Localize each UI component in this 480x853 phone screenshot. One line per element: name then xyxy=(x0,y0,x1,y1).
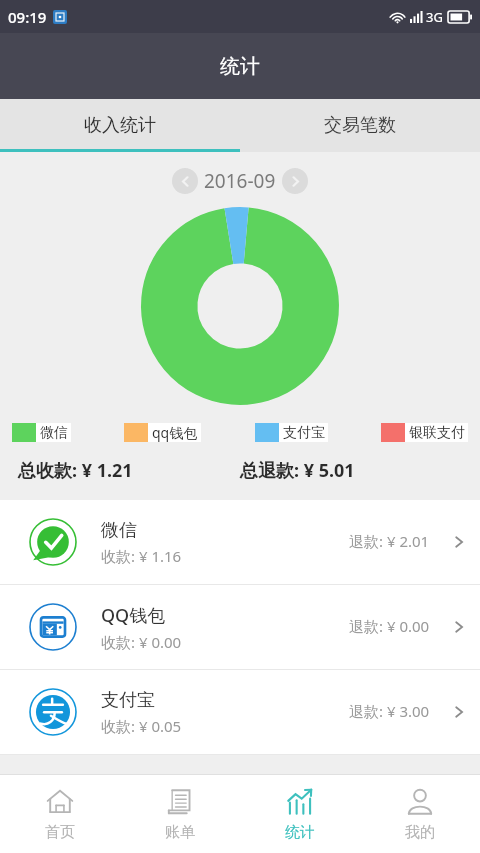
button[interactable]: 交易笔数 xyxy=(240,99,480,152)
staticText: 统计 xyxy=(285,823,315,842)
staticText: 退款: ¥ 2.01 xyxy=(349,531,430,551)
staticText: 首页 xyxy=(45,823,75,842)
staticText: 总收款: ¥ 1.21 xyxy=(18,458,133,483)
button[interactable]: 首页 xyxy=(0,775,120,853)
staticText: 3G xyxy=(426,8,443,26)
staticText: 我的 xyxy=(405,823,435,842)
staticText: 总退款: ¥ 5.01 xyxy=(240,458,355,483)
staticText: 交易笔数 xyxy=(324,114,396,137)
staticText: 微信 xyxy=(40,424,68,442)
staticText: 收款: ¥ 0.00 xyxy=(101,632,182,652)
button[interactable]: 我的 xyxy=(360,775,480,853)
staticText: QQ钱包 xyxy=(101,603,166,628)
staticText: qq钱包 xyxy=(152,423,198,442)
button[interactable]: 统计 xyxy=(240,775,360,853)
button[interactable]: Next month xyxy=(282,168,308,194)
staticText: 2016-09 xyxy=(204,168,276,194)
staticText: 支付宝 xyxy=(101,689,155,712)
staticText: 收入统计 xyxy=(84,114,156,137)
staticText: 退款: ¥ 3.00 xyxy=(349,701,430,721)
staticText: 账单 xyxy=(165,823,195,842)
staticText: 退款: ¥ 0.00 xyxy=(349,616,430,636)
button[interactable]: 账单 xyxy=(120,775,240,853)
staticText: 统计 xyxy=(220,54,260,79)
staticText: 微信 xyxy=(101,519,137,542)
staticText: 09:19 xyxy=(8,7,47,27)
button[interactable]: QQ钱包 xyxy=(0,585,480,669)
button[interactable]: 支付宝 xyxy=(0,670,480,754)
staticText: 支付宝 xyxy=(283,424,325,442)
staticText: 收款: ¥ 1.16 xyxy=(101,546,182,566)
staticText: 收款: ¥ 0.05 xyxy=(101,716,182,736)
button[interactable]: 微信 xyxy=(0,500,480,584)
button[interactable]: 收入统计 xyxy=(0,99,240,152)
button[interactable]: Previous month xyxy=(172,168,198,194)
staticText: 银联支付 xyxy=(409,424,465,442)
